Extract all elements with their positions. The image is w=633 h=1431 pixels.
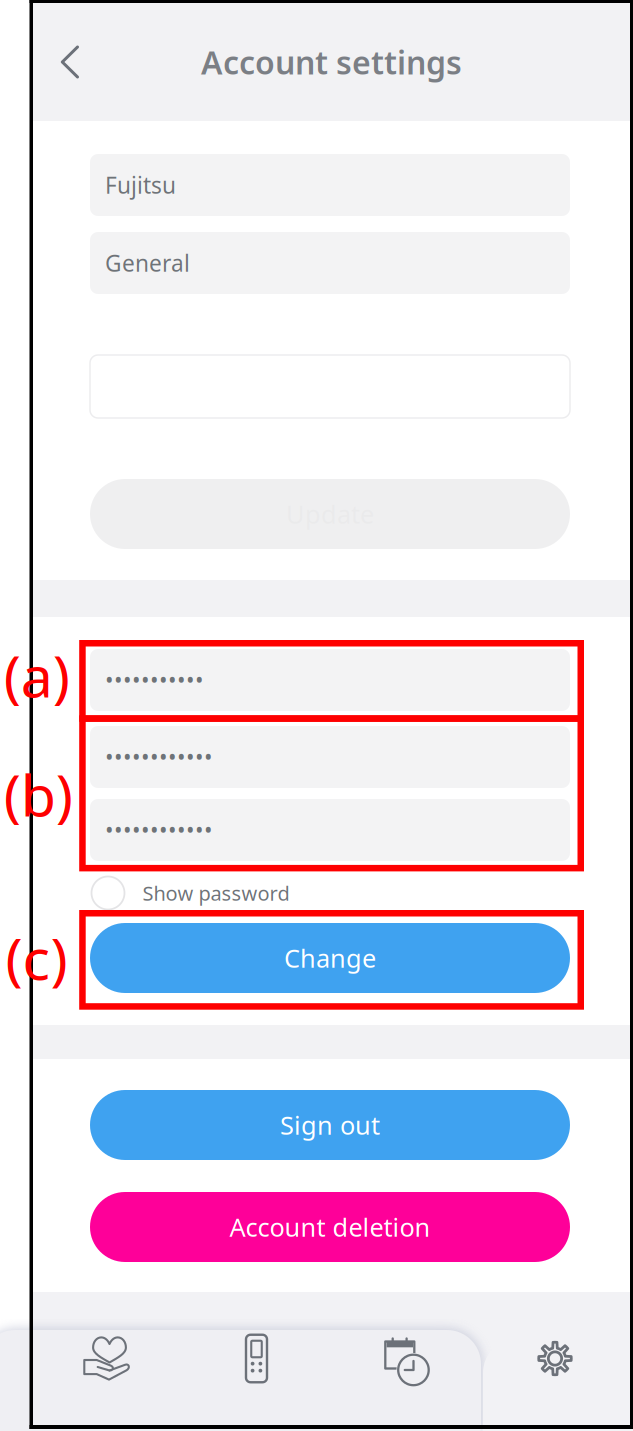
staticText: General bbox=[105, 248, 190, 278]
button[interactable]: Account deletion bbox=[90, 1192, 570, 1262]
staticText: Account settings bbox=[201, 41, 462, 83]
button[interactable]: Sign out bbox=[90, 1090, 570, 1160]
staticText: ••••••••••• bbox=[105, 665, 204, 695]
staticText: Sign out bbox=[280, 1108, 380, 1142]
staticText: Change bbox=[284, 941, 376, 975]
button[interactable]: Show password bbox=[90, 875, 570, 911]
staticText: Show password bbox=[142, 880, 289, 906]
button[interactable]: Remote bbox=[182, 1292, 331, 1425]
staticText: (b) bbox=[4, 756, 73, 832]
button[interactable]: Favorites bbox=[33, 1292, 182, 1425]
button[interactable]: Schedule bbox=[331, 1292, 480, 1425]
button[interactable]: Back bbox=[33, 3, 107, 121]
staticText: Fujitsu bbox=[105, 170, 176, 200]
button[interactable]: Settings bbox=[480, 1292, 630, 1425]
staticText: •••••••••••• bbox=[105, 742, 213, 772]
staticText: (a) bbox=[4, 637, 70, 713]
button[interactable]: Change bbox=[90, 923, 570, 993]
staticText: •••••••••••• bbox=[105, 815, 213, 845]
staticText: Account deletion bbox=[229, 1210, 430, 1244]
staticText: (c) bbox=[6, 920, 68, 996]
